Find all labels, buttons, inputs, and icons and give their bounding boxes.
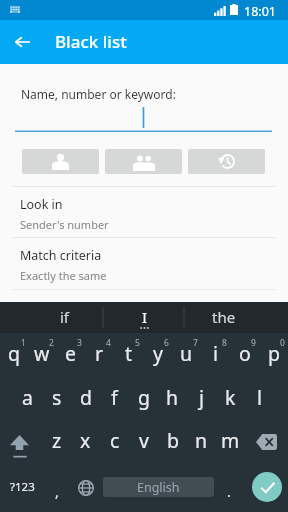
button[interactable]: k: [216, 377, 245, 420]
staticText: 2: [49, 337, 54, 349]
button[interactable]: b: [158, 420, 187, 463]
button[interactable]: Change keyboard language: [72, 463, 100, 512]
button[interactable]: Look in: [0, 186, 288, 237]
button[interactable]: d: [71, 377, 100, 420]
button[interactable]: 8: [201, 333, 230, 377]
staticText: 3: [77, 337, 82, 349]
staticText: o: [239, 340, 251, 367]
staticText: j: [199, 384, 205, 411]
button[interactable]: 9: [230, 333, 259, 377]
button[interactable]: 5: [114, 333, 143, 377]
staticText: m: [221, 427, 240, 454]
staticText: v: [139, 427, 149, 454]
staticText: English: [137, 479, 180, 496]
staticText: .: [227, 482, 231, 501]
staticText: 4: [106, 337, 111, 349]
button[interactable]: 1: [0, 333, 28, 377]
button[interactable]: I: [105, 302, 184, 333]
staticText: u: [180, 340, 193, 367]
staticText: y: [153, 340, 163, 367]
button[interactable]: English: [103, 477, 214, 497]
staticText: i: [213, 340, 219, 367]
staticText: ?123: [10, 479, 35, 495]
staticText: c: [110, 427, 120, 454]
staticText: 9: [251, 337, 256, 349]
button[interactable]: .: [216, 463, 242, 512]
button[interactable]: 4: [85, 333, 114, 377]
staticText: Name, number or keyword:: [21, 86, 176, 102]
staticText: e: [65, 340, 76, 367]
button[interactable]: 2: [28, 333, 56, 377]
button[interactable]: v: [129, 420, 158, 463]
staticText: x: [80, 427, 91, 454]
button[interactable]: n: [187, 420, 216, 463]
staticText: I: [142, 307, 148, 327]
button[interactable]: the: [184, 302, 263, 333]
button[interactable]: Choose contact: [22, 149, 99, 174]
staticText: 1: [21, 337, 26, 349]
button[interactable]: m: [216, 420, 245, 463]
staticText: n: [195, 427, 208, 454]
staticText: 8: [222, 337, 227, 349]
staticText: f: [111, 384, 118, 411]
button[interactable]: ?123: [0, 463, 50, 512]
staticText: Look in: [20, 196, 63, 213]
button[interactable]: Choose group: [105, 149, 182, 174]
staticText: Sender's number: [20, 217, 109, 232]
button[interactable]: s: [42, 377, 71, 420]
staticText: w: [34, 340, 50, 367]
button[interactable]: Match criteria: [0, 237, 288, 288]
staticText: 6: [164, 337, 169, 349]
staticText: 18:01: [244, 3, 276, 20]
staticText: Match criteria: [20, 247, 102, 264]
staticText: s: [52, 384, 62, 411]
button[interactable]: 0: [259, 333, 288, 377]
button[interactable]: if: [25, 302, 105, 333]
staticText: 5: [135, 337, 140, 349]
staticText: Black list: [55, 30, 127, 53]
button[interactable]: c: [100, 420, 129, 463]
button[interactable]: Delete: [245, 420, 288, 463]
staticText: a: [22, 384, 33, 411]
staticText: b: [167, 427, 179, 454]
staticText: h: [166, 384, 179, 411]
button[interactable]: Navigate up: [0, 20, 44, 64]
button[interactable]: Enter: [252, 472, 282, 502]
button[interactable]: z: [42, 420, 71, 463]
staticText: q: [8, 340, 20, 367]
staticText: the: [212, 307, 236, 327]
button[interactable]: l: [245, 377, 274, 420]
button[interactable]: 6: [143, 333, 172, 377]
staticText: t: [125, 340, 133, 367]
button[interactable]: Call log: [188, 149, 265, 174]
button[interactable]: x: [71, 420, 100, 463]
button[interactable]: g: [129, 377, 158, 420]
staticText: Exactly the same: [20, 268, 107, 283]
button[interactable]: h: [158, 377, 187, 420]
staticText: r: [95, 340, 104, 367]
staticText: p: [268, 340, 280, 367]
staticText: 0: [280, 337, 285, 349]
button[interactable]: j: [187, 377, 216, 420]
button[interactable]: 7: [172, 333, 201, 377]
button[interactable]: 3: [56, 333, 85, 377]
staticText: l: [257, 384, 263, 411]
staticText: 7: [193, 337, 198, 349]
staticText: d: [80, 384, 92, 411]
staticText: ,: [55, 482, 59, 501]
button[interactable]: ,: [44, 463, 70, 512]
staticText: if: [60, 307, 70, 327]
button[interactable]: f: [100, 377, 129, 420]
staticText: k: [225, 384, 236, 411]
button[interactable]: Shift: [0, 420, 42, 463]
button[interactable]: a: [13, 377, 42, 420]
staticText: z: [52, 427, 62, 454]
staticText: g: [138, 384, 150, 411]
